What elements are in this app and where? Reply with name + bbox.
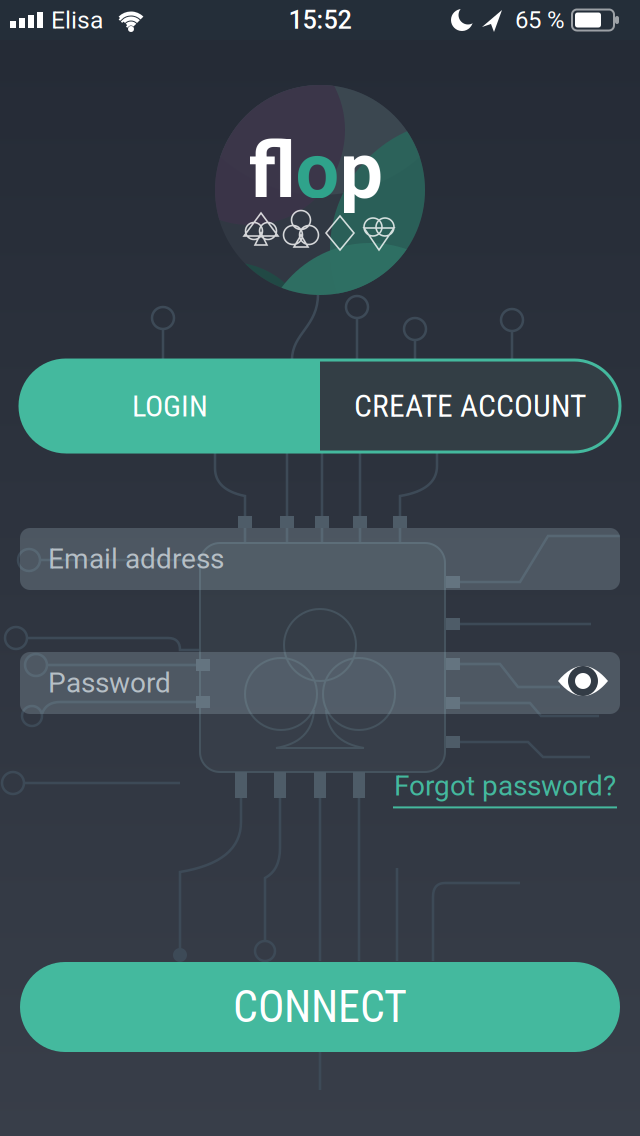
staticText: 15:52 bbox=[288, 5, 351, 35]
button[interactable]: CONNECT bbox=[20, 962, 620, 1052]
staticText: Password bbox=[48, 667, 171, 699]
staticText: 65 % bbox=[515, 6, 565, 34]
staticText: Email address bbox=[48, 543, 224, 575]
staticText: p bbox=[339, 126, 383, 216]
staticText: Forgot password? bbox=[394, 770, 616, 802]
button[interactable]: CREATE ACCOUNT bbox=[320, 360, 620, 452]
button[interactable]: Show password bbox=[555, 659, 611, 703]
staticText: CREATE ACCOUNT bbox=[354, 387, 586, 424]
button[interactable]: Forgot password? bbox=[393, 770, 617, 808]
button[interactable]: LOGIN bbox=[20, 360, 320, 452]
button[interactable]: Password bbox=[20, 652, 620, 714]
staticText: CONNECT bbox=[233, 981, 407, 1033]
staticText: LOGIN bbox=[132, 388, 208, 424]
staticText: o bbox=[295, 126, 339, 216]
staticText: Elisa bbox=[51, 5, 103, 34]
button[interactable]: Email address bbox=[20, 528, 620, 590]
staticText: fl bbox=[248, 126, 295, 216]
